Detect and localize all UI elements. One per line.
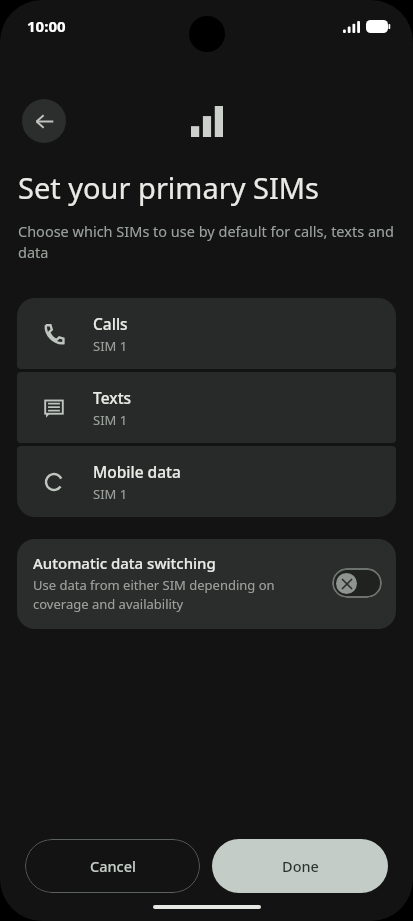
button[interactable]: Automatic data switching (17, 539, 396, 629)
staticText: Cancel (90, 856, 136, 876)
staticText: Mobile data (93, 461, 181, 482)
staticText: SIM 1 (93, 337, 128, 355)
button[interactable]: Done (212, 839, 388, 893)
button[interactable]: Texts (17, 372, 396, 443)
staticText: 10:00 (27, 16, 66, 36)
button[interactable]: Cancel (25, 839, 200, 893)
button[interactable]: Calls (17, 298, 396, 369)
staticText: Automatic data switching (33, 553, 216, 573)
staticText: Use data from either SIM depending on co… (33, 576, 322, 613)
staticText: Done (282, 856, 319, 876)
staticText: Set your primary SIMs (18, 168, 319, 207)
button[interactable]: Automatic data switching toggle (332, 568, 382, 598)
staticText: Calls (93, 313, 128, 334)
staticText: SIM 1 (93, 485, 128, 503)
button[interactable]: Back (22, 99, 66, 143)
staticText: Texts (93, 387, 132, 408)
staticText: SIM 1 (93, 411, 128, 429)
staticText: Choose which SIMs to use by default for … (18, 221, 395, 263)
button[interactable]: Mobile data (17, 446, 396, 517)
